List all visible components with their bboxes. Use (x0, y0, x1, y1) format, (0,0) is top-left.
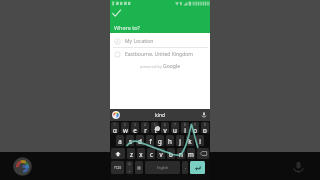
button[interactable]: . (182, 161, 188, 174)
staticText: y (163, 126, 167, 133)
button[interactable]: d (136, 135, 144, 146)
button[interactable]: 1 (111, 122, 119, 133)
staticText: a (118, 137, 122, 145)
staticText: r (144, 126, 147, 133)
button[interactable]: c (147, 148, 155, 159)
staticText: Where to? (114, 24, 141, 31)
staticText: p (203, 126, 207, 133)
staticText: 0 (204, 123, 206, 127)
staticText: e (133, 126, 137, 133)
staticText: o (193, 126, 197, 133)
button[interactable] (111, 148, 125, 159)
button[interactable]: l (196, 135, 204, 146)
button[interactable]: s (126, 135, 134, 146)
staticText: 5 (154, 123, 156, 127)
staticText: b (169, 150, 173, 158)
staticText: m (188, 150, 194, 158)
staticText: Google (163, 63, 181, 70)
button[interactable]: 5 (151, 122, 159, 133)
button[interactable]: 9 (191, 122, 199, 133)
staticText: x (139, 150, 143, 158)
button[interactable]: 7 (171, 122, 179, 133)
staticText: 8 (184, 123, 186, 127)
button[interactable]: z (127, 148, 135, 159)
button[interactable]: b (167, 148, 175, 159)
staticText: t (154, 126, 157, 133)
staticText: English (157, 166, 168, 170)
staticText: ☺ (128, 162, 132, 165)
button[interactable]: Confirm (111, 8, 122, 19)
button[interactable]: h (166, 135, 174, 146)
staticText: f (149, 137, 152, 145)
button[interactable]: Eastbourne, United Kingdom (110, 48, 210, 60)
staticText: c (150, 150, 153, 158)
button[interactable]: 3 (131, 122, 139, 133)
staticText: ?123 (114, 166, 121, 170)
button[interactable]: 0 (201, 122, 209, 133)
button[interactable]: ☺ (126, 161, 133, 174)
staticText: q (113, 126, 117, 133)
button[interactable]: n (177, 148, 185, 159)
staticText: n (179, 150, 183, 158)
staticText: . (185, 166, 186, 170)
button[interactable]: Voice search (292, 161, 305, 174)
button[interactable]: f (146, 135, 154, 146)
staticText: powered by (140, 64, 163, 69)
button[interactable]: a (116, 135, 124, 146)
staticText: s (129, 137, 132, 145)
button[interactable]: m (187, 148, 195, 159)
staticText: d (138, 137, 142, 145)
staticText: My Location (125, 38, 154, 45)
button[interactable]: 6 (161, 122, 169, 133)
button[interactable]: j (176, 135, 184, 146)
staticText: 4 (144, 123, 146, 127)
staticText: 6 (164, 123, 166, 127)
button[interactable]: Google (13, 157, 32, 176)
staticText: 9 (194, 123, 196, 127)
staticText: Eastbourne, United Kingdom (125, 51, 193, 58)
staticText: j (179, 137, 181, 145)
button[interactable]: 8 (181, 122, 189, 133)
staticText: k (188, 137, 192, 145)
staticText: z (130, 150, 133, 158)
staticText: 3 (134, 123, 136, 127)
button[interactable]: My Location (110, 35, 210, 47)
staticText: 7 (174, 123, 176, 127)
staticText: kind (155, 112, 166, 119)
button[interactable]: 2 (121, 122, 129, 133)
button[interactable]: ?123 (111, 161, 124, 174)
button[interactable]: x (137, 148, 145, 159)
button[interactable]: k (186, 135, 194, 146)
staticText: 2 (124, 123, 126, 127)
staticText: g (158, 137, 162, 145)
staticText: u (173, 126, 177, 133)
button[interactable]: Voice input (201, 112, 207, 118)
staticText: v (159, 150, 163, 158)
staticText: 1 (114, 123, 116, 127)
button[interactable]: v (157, 148, 165, 159)
staticText: l (199, 137, 201, 145)
button[interactable]: English (145, 161, 180, 174)
button[interactable]: g (156, 135, 164, 146)
button[interactable] (135, 161, 143, 174)
staticText: , (129, 168, 130, 172)
button[interactable] (197, 148, 209, 159)
button[interactable]: 4 (141, 122, 149, 133)
staticText: w (123, 126, 128, 133)
staticText: h (168, 137, 172, 145)
button[interactable] (190, 161, 205, 174)
staticText: i (184, 126, 186, 133)
